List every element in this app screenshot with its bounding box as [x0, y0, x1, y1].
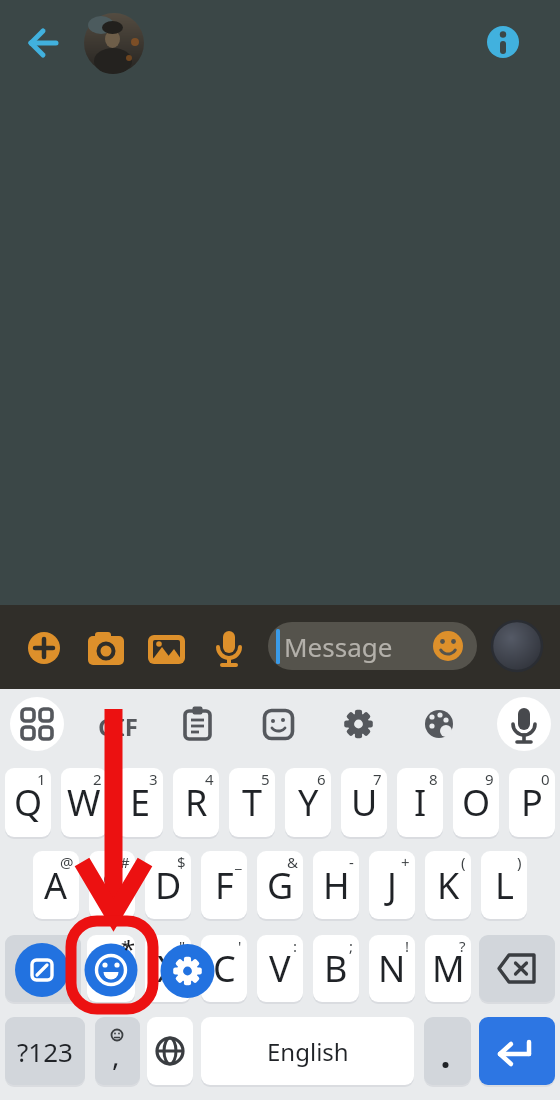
staticText: ?	[459, 936, 466, 956]
button[interactable]	[147, 1017, 193, 1085]
button[interactable]: I	[397, 768, 443, 837]
staticText: 7	[373, 769, 382, 789]
staticText: +	[401, 852, 410, 872]
button[interactable]: D	[145, 851, 191, 919]
button[interactable]	[26, 630, 62, 666]
staticText: I	[414, 778, 427, 827]
button[interactable]: J	[369, 851, 415, 919]
staticText: M	[432, 944, 465, 993]
button[interactable]: T	[229, 768, 275, 837]
button[interactable]	[492, 621, 542, 671]
staticText: 9	[485, 769, 494, 789]
staticText: R	[185, 778, 208, 827]
button[interactable]: P	[509, 768, 555, 837]
button[interactable]: W	[61, 768, 107, 837]
button[interactable]: A	[33, 851, 79, 919]
staticText: &	[287, 852, 298, 872]
button[interactable]: Q	[5, 768, 51, 837]
button[interactable]: Message	[268, 622, 477, 670]
staticText: #	[120, 852, 130, 872]
button[interactable]: S	[89, 851, 135, 919]
button[interactable]	[490, 697, 545, 752]
staticText: *	[121, 936, 130, 956]
button[interactable]	[5, 935, 81, 1002]
button[interactable]	[210, 628, 248, 668]
staticText: !	[405, 936, 410, 956]
staticText: K	[437, 861, 460, 910]
staticText: F	[215, 861, 234, 910]
button[interactable]: X	[145, 935, 191, 1002]
button[interactable]: E	[117, 768, 163, 837]
staticText: -	[349, 852, 354, 872]
staticText: V	[269, 944, 291, 993]
staticText: P	[521, 778, 543, 827]
staticText: '	[238, 936, 242, 956]
button[interactable]: G	[257, 851, 303, 919]
staticText: 5	[261, 769, 270, 789]
button[interactable]	[330, 697, 385, 752]
button[interactable]: M	[425, 935, 471, 1002]
staticText: O	[462, 778, 491, 827]
staticText: 2	[93, 769, 102, 789]
staticText: X	[157, 944, 179, 993]
button[interactable]: English	[201, 1017, 414, 1085]
button[interactable]	[10, 697, 65, 752]
staticText: 8	[429, 769, 438, 789]
staticText: _	[235, 852, 242, 872]
button[interactable]	[424, 1017, 471, 1085]
button[interactable]: N	[369, 935, 415, 1002]
staticText: :	[293, 936, 298, 956]
staticText: @	[60, 852, 74, 872]
staticText: $	[177, 852, 186, 872]
staticText: T	[242, 778, 263, 827]
button[interactable]: U	[341, 768, 387, 837]
staticText: H	[323, 861, 350, 910]
staticText: 3	[149, 769, 158, 789]
button[interactable]	[20, 24, 64, 64]
button[interactable]: ?123	[5, 1017, 85, 1085]
button[interactable]: H	[313, 851, 359, 919]
button[interactable]	[479, 935, 555, 1002]
staticText: N	[378, 944, 406, 993]
staticText: U	[351, 778, 378, 827]
button[interactable]: B	[313, 935, 359, 1002]
staticText: Message	[284, 629, 393, 664]
staticText: 4	[205, 769, 214, 789]
staticText: L	[495, 861, 514, 910]
button[interactable]	[486, 24, 522, 60]
button[interactable]: K	[425, 851, 471, 919]
staticText: 1	[37, 769, 46, 789]
staticText: E	[130, 778, 151, 827]
staticText: W	[67, 778, 101, 827]
button[interactable]: Y	[285, 768, 331, 837]
staticText: A	[44, 861, 68, 910]
staticText: C	[213, 944, 236, 993]
staticText: S	[102, 861, 122, 910]
button[interactable]: O	[453, 768, 499, 837]
staticText: G	[267, 861, 294, 910]
staticText: Q	[14, 778, 43, 827]
button[interactable]	[146, 630, 186, 666]
button[interactable]	[95, 1017, 140, 1085]
staticText: B	[324, 944, 348, 993]
staticText: ?123	[17, 1034, 73, 1069]
button[interactable]: F	[201, 851, 247, 919]
staticText: ;	[349, 936, 354, 956]
button[interactable]: *	[87, 935, 135, 1002]
button[interactable]	[84, 13, 144, 73]
staticText: "	[179, 936, 186, 956]
button[interactable]: V	[257, 935, 303, 1002]
button[interactable]	[410, 697, 465, 752]
button[interactable]	[86, 630, 126, 666]
staticText: ,	[112, 1036, 120, 1074]
staticText: Y	[298, 778, 319, 827]
button[interactable]	[479, 1017, 555, 1085]
button[interactable]: R	[173, 768, 219, 837]
button[interactable]: L	[481, 851, 527, 919]
button[interactable]: C	[201, 935, 247, 1002]
staticText: 0	[541, 769, 550, 789]
button[interactable]	[90, 697, 145, 752]
staticText: 6	[317, 769, 326, 789]
button[interactable]	[170, 697, 225, 752]
button[interactable]	[250, 697, 305, 752]
